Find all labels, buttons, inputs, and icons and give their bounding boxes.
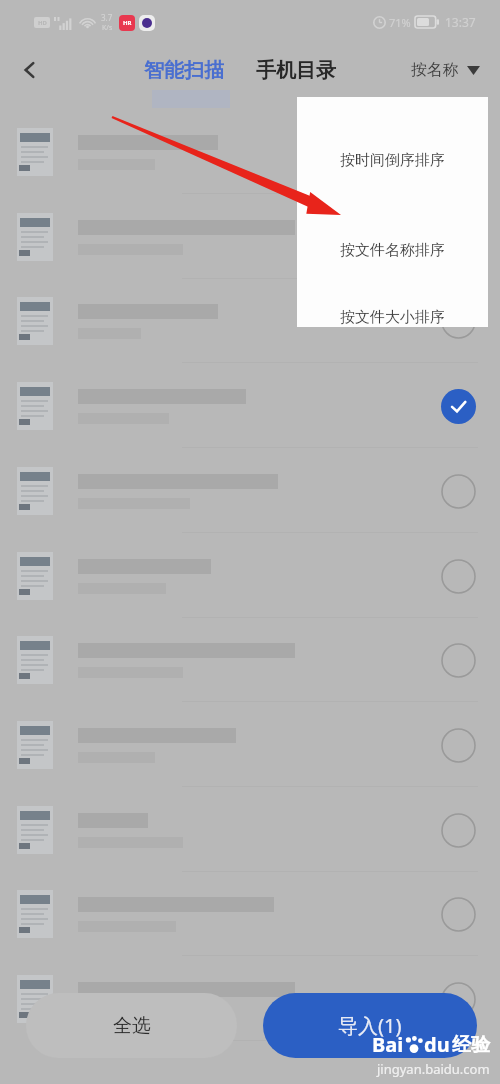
button[interactable]: 选择: [0, 534, 500, 618]
staticText: HR: [123, 19, 132, 27]
staticText: 3.7: [101, 12, 113, 23]
staticText: du: [424, 1031, 450, 1058]
button[interactable]: 选择: [438, 810, 478, 850]
button[interactable]: 智能扫描: [140, 52, 228, 89]
button[interactable]: 选择: [0, 872, 500, 956]
staticText: 按名称: [411, 60, 459, 80]
staticText: jingyan.baidu.com: [377, 1060, 490, 1078]
button[interactable]: 已选择: [0, 364, 500, 448]
button[interactable]: 选择: [438, 132, 478, 172]
staticText: K/s: [102, 23, 113, 33]
staticText: 按文件名称排序: [340, 241, 445, 260]
button[interactable]: 选择: [0, 449, 500, 533]
button[interactable]: 选择: [438, 894, 478, 934]
staticText: 经验: [452, 1033, 490, 1057]
staticText: 全选: [113, 1014, 151, 1038]
button[interactable]: 手机目录: [252, 52, 340, 89]
button[interactable]: 选择: [0, 110, 500, 194]
button[interactable]: 选择: [438, 725, 478, 765]
button[interactable]: 选择: [438, 217, 478, 257]
button[interactable]: 按文件名称排序: [297, 170, 488, 260]
button[interactable]: 返回: [8, 48, 52, 92]
staticText: 智能扫描: [144, 58, 224, 83]
button[interactable]: 选择: [0, 703, 500, 787]
staticText: 13:37: [445, 14, 476, 30]
button[interactable]: 选择: [0, 957, 500, 1041]
button[interactable]: 选择: [0, 788, 500, 872]
staticText: 按时间倒序排序: [340, 151, 445, 170]
button[interactable]: 选择: [0, 618, 500, 702]
button[interactable]: 选择: [438, 301, 478, 341]
button[interactable]: 按名称: [407, 54, 484, 86]
button[interactable]: 选择: [438, 640, 478, 680]
staticText: 按文件大小排序: [340, 308, 445, 327]
staticText: 手机目录: [256, 58, 336, 83]
button[interactable]: 选择: [0, 195, 500, 279]
staticText: Bai: [372, 1031, 404, 1058]
button[interactable]: 全选: [26, 993, 237, 1058]
button[interactable]: 选择: [0, 279, 500, 363]
button[interactable]: 按时间倒序排序: [297, 97, 488, 170]
button[interactable]: 已选择: [438, 386, 478, 426]
staticText: 71%: [389, 15, 411, 30]
button[interactable]: 选择: [438, 979, 478, 1019]
button[interactable]: 选择: [438, 471, 478, 511]
button[interactable]: 选择: [438, 556, 478, 596]
staticText: HD: [38, 19, 47, 27]
button[interactable]: 导入(1): [263, 993, 477, 1058]
button[interactable]: 按文件大小排序: [297, 260, 488, 327]
staticText: 导入(1): [338, 1012, 402, 1039]
